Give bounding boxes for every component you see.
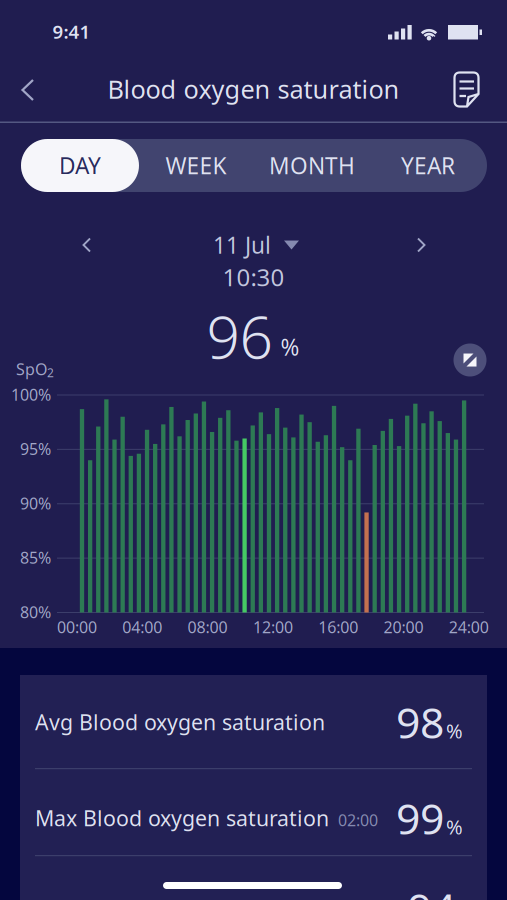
staticText: 24:00 [449, 616, 489, 638]
staticText: 16:00 [318, 616, 358, 638]
staticText: 2 [47, 365, 54, 380]
staticText: 99 [396, 790, 444, 846]
staticText: MONTH [269, 150, 355, 180]
staticText: 10:30 [222, 261, 284, 293]
staticText: Blood oxygen saturation [107, 72, 399, 106]
staticText: 100% [11, 384, 51, 405]
staticText: 20:00 [383, 616, 423, 638]
button[interactable]: Next day [406, 226, 436, 263]
staticText: Max Blood oxygen saturation [35, 804, 329, 832]
staticText: 95% [20, 438, 51, 459]
staticText: 08:00 [188, 616, 228, 638]
staticText: Avg Blood oxygen saturation [35, 708, 325, 736]
staticText: 94 [407, 880, 455, 900]
button[interactable]: Back [11, 67, 45, 113]
staticText: 96 [206, 297, 272, 375]
button[interactable]: MONTH [254, 139, 370, 192]
staticText: 90% [20, 493, 51, 514]
button[interactable]: WEEK [138, 139, 254, 192]
button[interactable]: Select date [213, 230, 299, 260]
button[interactable]: Previous day [72, 226, 102, 263]
staticText: 12:00 [253, 616, 293, 638]
staticText: % [280, 332, 299, 362]
staticText: 85% [20, 547, 51, 568]
staticText: 9:41 [52, 19, 90, 44]
staticText: 98 [396, 694, 444, 750]
staticText: % [446, 717, 463, 744]
staticText: % [446, 813, 463, 840]
staticText: DAY [59, 150, 101, 180]
button[interactable]: YEAR [370, 139, 486, 192]
button[interactable]: Chart style [453, 343, 486, 376]
button[interactable]: Records [446, 64, 486, 114]
staticText: 02:00 [338, 809, 378, 831]
staticText: 80% [20, 601, 51, 623]
staticText: YEAR [401, 150, 455, 180]
staticText: 04:00 [122, 616, 162, 638]
staticText: 11 Jul [213, 230, 271, 260]
staticText: 00:00 [57, 616, 97, 638]
button[interactable]: DAY [21, 139, 139, 192]
staticText: WEEK [165, 150, 226, 180]
staticText: SpO [16, 358, 47, 380]
